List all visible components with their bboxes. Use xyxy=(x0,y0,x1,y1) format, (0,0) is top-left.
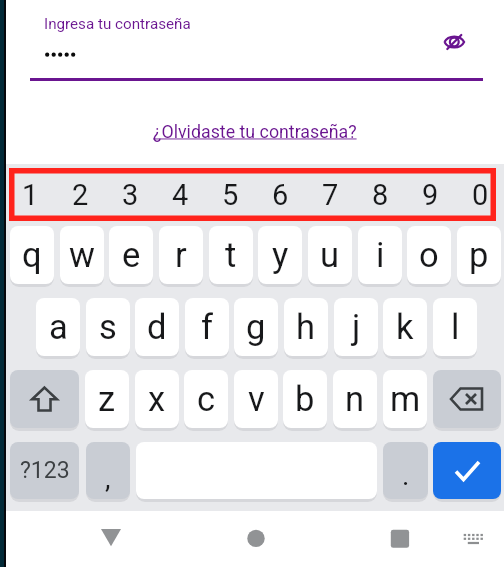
staticText: Ingresa tu contraseña xyxy=(44,15,191,33)
staticText: 6 xyxy=(272,178,289,212)
button[interactable]: n xyxy=(333,370,377,428)
button[interactable]: 8 xyxy=(355,168,405,221)
button[interactable]: Mostrar contraseña xyxy=(432,20,476,64)
button[interactable]: Punto xyxy=(383,442,428,499)
button[interactable]: 0 xyxy=(455,168,504,221)
staticText: l xyxy=(451,307,460,347)
button[interactable]: e xyxy=(109,226,153,284)
button[interactable]: p xyxy=(457,226,501,284)
staticText: h xyxy=(296,307,316,347)
button[interactable]: Borrar xyxy=(433,370,501,428)
staticText: 0 xyxy=(472,178,489,212)
button[interactable]: o xyxy=(407,226,451,284)
staticText: y xyxy=(272,235,289,275)
button[interactable]: q xyxy=(10,226,54,284)
staticText: o xyxy=(419,235,439,275)
button[interactable]: l xyxy=(433,298,477,356)
button[interactable]: 9 xyxy=(405,168,455,221)
button[interactable]: Cambiar teclado xyxy=(449,511,497,567)
button[interactable]: f xyxy=(185,298,229,356)
button[interactable]: y xyxy=(258,226,302,284)
button[interactable]: 4 xyxy=(155,168,205,221)
staticText: a xyxy=(49,307,68,347)
button[interactable]: d xyxy=(135,298,179,356)
button[interactable]: s xyxy=(86,298,130,356)
button[interactable]: Aplicaciones recientes xyxy=(370,511,430,567)
staticText: 3 xyxy=(122,178,139,212)
button[interactable]: 7 xyxy=(305,168,355,221)
button[interactable]: j xyxy=(334,298,378,356)
staticText: i xyxy=(376,235,385,275)
button[interactable]: 5 xyxy=(205,168,255,221)
button[interactable]: w xyxy=(60,226,104,284)
button[interactable]: ?123 xyxy=(10,442,79,499)
staticText: k xyxy=(396,307,414,347)
button[interactable]: x xyxy=(135,370,179,428)
staticText: 7 xyxy=(322,178,339,212)
button[interactable]: 3 xyxy=(105,168,155,221)
button[interactable]: z xyxy=(85,370,129,428)
staticText: x xyxy=(148,379,166,419)
staticText: ?123 xyxy=(20,457,70,484)
button[interactable]: u xyxy=(308,226,352,284)
staticText: w xyxy=(69,235,95,275)
staticText: m xyxy=(390,379,421,419)
button[interactable]: b xyxy=(283,370,327,428)
button[interactable]: Inicio xyxy=(226,511,286,567)
staticText: g xyxy=(246,307,266,347)
staticText: c xyxy=(197,379,216,419)
staticText: 2 xyxy=(72,178,89,212)
button[interactable]: h xyxy=(284,298,328,356)
button[interactable]: ¿Olvidaste tu contraseña? xyxy=(153,118,357,144)
staticText: , xyxy=(105,462,111,495)
button[interactable]: a xyxy=(36,298,80,356)
staticText: u xyxy=(320,235,340,275)
staticText: . xyxy=(402,459,410,492)
button[interactable]: Aceptar xyxy=(433,442,501,499)
button[interactable]: i xyxy=(358,226,402,284)
staticText: s xyxy=(99,307,117,347)
button[interactable]: Mayúsculas xyxy=(10,370,79,428)
staticText: n xyxy=(345,379,365,419)
staticText: b xyxy=(295,379,315,419)
staticText: 8 xyxy=(372,178,389,212)
button[interactable]: r xyxy=(159,226,203,284)
staticText: d xyxy=(147,307,167,347)
button[interactable]: k xyxy=(383,298,427,356)
staticText: f xyxy=(201,307,213,347)
staticText: 5 xyxy=(222,178,239,212)
staticText: v xyxy=(248,379,265,419)
staticText: r xyxy=(175,235,187,275)
button[interactable]: v xyxy=(234,370,278,428)
button[interactable]: c xyxy=(184,370,228,428)
staticText: ¿Olvidaste tu contraseña? xyxy=(153,121,357,142)
staticText: z xyxy=(98,379,116,419)
staticText: t xyxy=(225,235,237,275)
button[interactable]: 1 xyxy=(5,168,55,221)
staticText: q xyxy=(22,235,42,275)
button[interactable]: Coma xyxy=(86,442,130,499)
staticText: 9 xyxy=(422,178,439,212)
staticText: p xyxy=(469,235,489,275)
button[interactable]: 6 xyxy=(255,168,305,221)
button[interactable]: t xyxy=(209,226,253,284)
button[interactable]: m xyxy=(383,370,427,428)
staticText: j xyxy=(352,307,361,347)
button[interactable]: Ocultar teclado xyxy=(81,511,141,567)
staticText: 4 xyxy=(172,178,189,212)
staticText: 1 xyxy=(22,178,39,212)
button[interactable]: g xyxy=(234,298,278,356)
staticText: e xyxy=(122,235,141,275)
button[interactable]: 2 xyxy=(55,168,105,221)
